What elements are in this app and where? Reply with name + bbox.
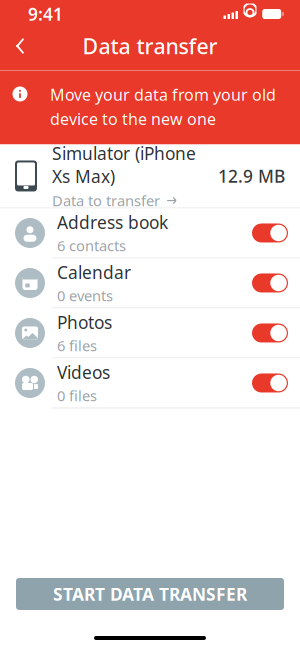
staticText: 0 files (57, 386, 97, 405)
staticText: Address book (57, 211, 168, 234)
staticText: Photos (57, 311, 112, 334)
staticText: 12.9 MB (218, 164, 285, 187)
button[interactable]: Calendar (0, 258, 300, 308)
staticText: Data to transfer (52, 191, 160, 210)
staticText: 9:41 (28, 2, 63, 25)
staticText: START DATA TRANSFER (53, 582, 247, 605)
staticText: Move your data from your old device to t… (50, 84, 276, 129)
staticText: Videos (57, 361, 110, 384)
button[interactable]: Address book (0, 208, 300, 258)
button[interactable]: Videos (0, 358, 300, 408)
staticText: Data transfer (82, 32, 217, 60)
staticText: 6 files (57, 336, 97, 355)
button[interactable]: Back (0, 28, 40, 64)
button[interactable]: Photos (0, 308, 300, 358)
staticText: Calendar (57, 261, 131, 284)
button[interactable]: START DATA TRANSFER (16, 578, 284, 610)
staticText: 0 events (57, 286, 113, 305)
staticText: Simulator (iPhone Xs Max) (52, 142, 196, 188)
staticText: 6 contacts (57, 236, 126, 255)
